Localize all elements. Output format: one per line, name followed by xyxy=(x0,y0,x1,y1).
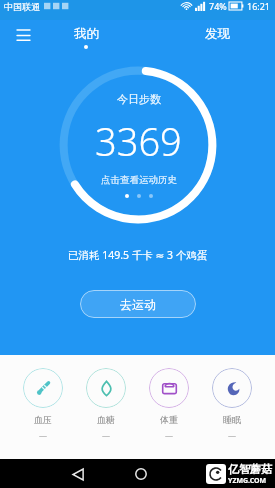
staticText: 点击查看运动历史 xyxy=(101,174,177,186)
staticText: — xyxy=(39,430,47,441)
staticText: 中国联通 xyxy=(4,1,40,12)
staticText: 血压 xyxy=(34,414,52,425)
staticText: 74% xyxy=(209,0,227,12)
button[interactable]: 今日步数 xyxy=(56,63,220,227)
staticText: 16:21 xyxy=(247,0,271,12)
button[interactable]: Menu xyxy=(8,20,38,50)
button[interactable]: 睡眠 xyxy=(204,368,260,441)
staticText: 血糖 xyxy=(97,414,115,425)
button[interactable]: 血糖 xyxy=(78,368,134,441)
staticText: — xyxy=(228,430,236,441)
staticText: 已消耗 149.5 千卡 ≈ 3 个鸡蛋 xyxy=(68,248,208,262)
staticText: YZMG.COM xyxy=(228,476,267,486)
button[interactable]: 去运动 xyxy=(80,290,196,318)
staticText: 体重 xyxy=(160,414,178,425)
button[interactable]: Back xyxy=(66,462,90,486)
button[interactable]: 体重 xyxy=(141,368,197,441)
button[interactable]: 我的 xyxy=(62,26,110,49)
button[interactable]: 血压 xyxy=(15,368,71,441)
staticText: 发现 xyxy=(205,26,230,42)
button[interactable]: 发现 xyxy=(205,26,230,42)
staticText: — xyxy=(102,430,110,441)
staticText: 3369 xyxy=(95,115,182,167)
staticText: 今日步数 xyxy=(117,92,161,106)
staticText: 亿智蘑菇 xyxy=(228,462,272,476)
staticText: — xyxy=(165,430,173,441)
staticText: 睡眠 xyxy=(223,414,241,425)
staticText: 去运动 xyxy=(120,297,156,312)
button[interactable]: Home xyxy=(129,462,153,486)
staticText: 我的 xyxy=(74,26,99,42)
